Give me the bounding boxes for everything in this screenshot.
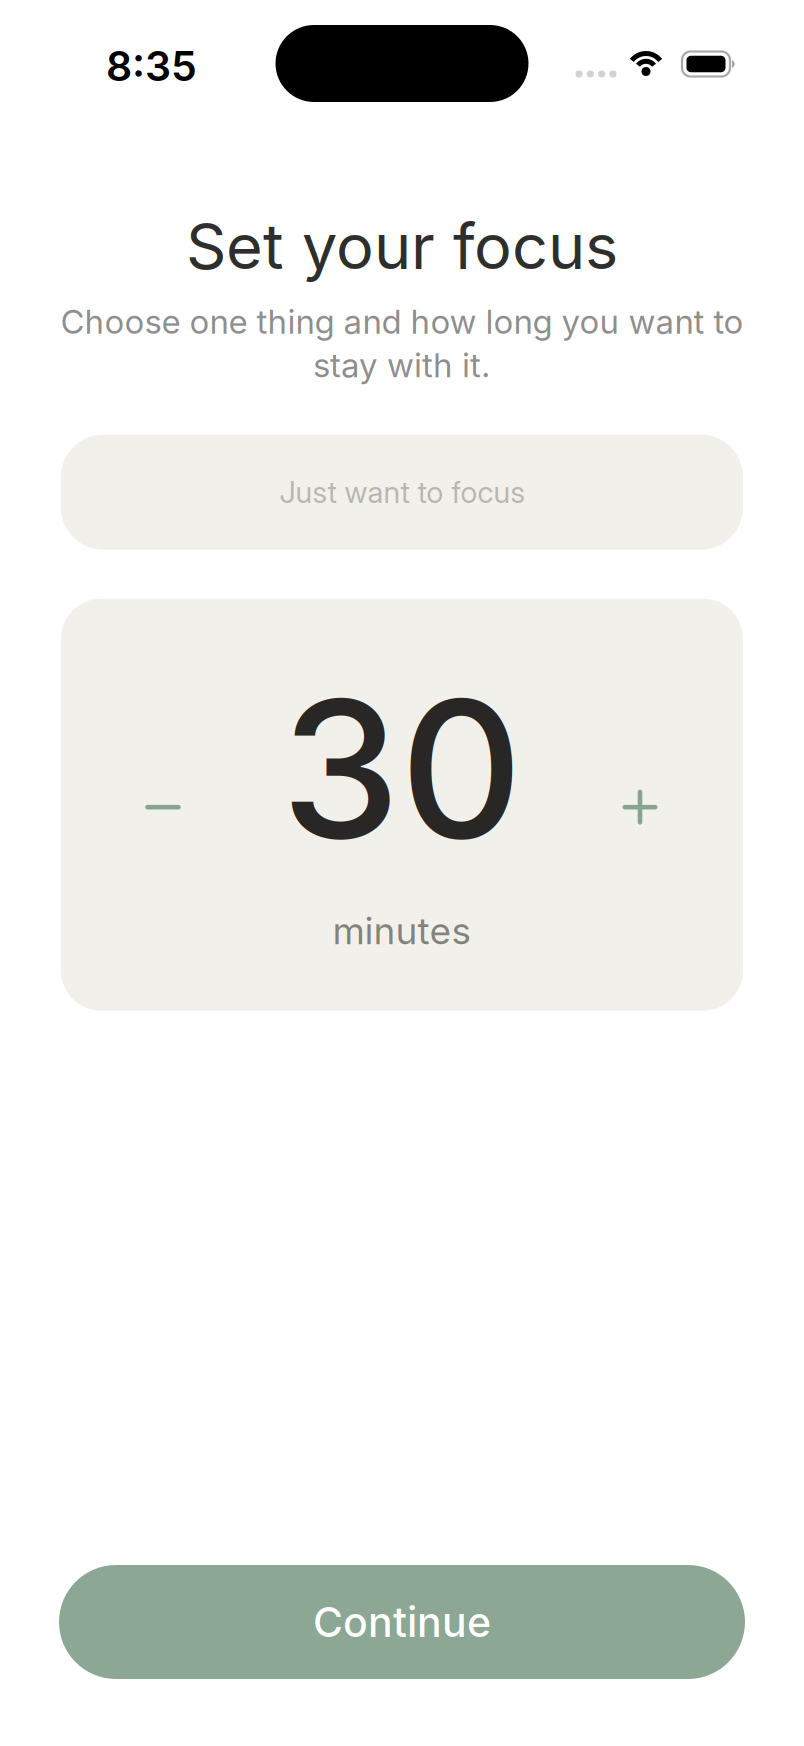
staticText: Set your focus [186,209,618,283]
staticText: Continue [313,1598,491,1646]
button[interactable]: Continue [59,1565,745,1679]
staticText: stay with it. [313,346,491,385]
staticText: minutes [332,909,471,952]
button[interactable]: Just want to focus [61,435,743,550]
staticText: 30 [281,657,523,881]
button[interactable]: Decrease minutes [118,762,208,852]
staticText: 8:35 [106,42,197,90]
staticText: Just want to focus [279,474,524,510]
button[interactable]: Increase minutes [595,762,685,852]
staticText: Choose one thing and how long you want t… [60,302,743,341]
